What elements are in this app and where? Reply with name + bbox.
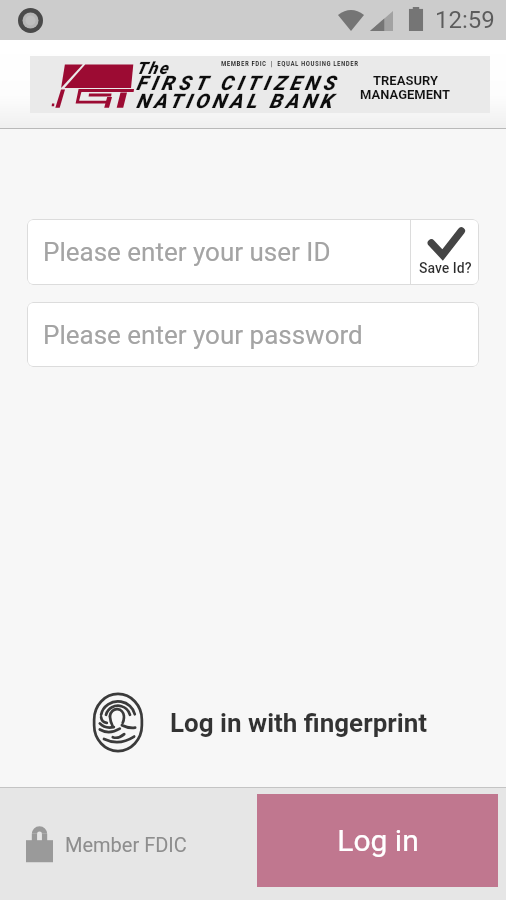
button[interactable]: Log in with fingerprint [0,686,506,759]
staticText: Please enter your password [43,320,363,350]
button[interactable]: Please enter your user ID [27,219,410,285]
staticText: 12:59 [435,6,495,34]
staticText: Log in [337,823,419,858]
staticText: Log in with fingerprint [170,708,428,738]
staticText: TREASURY [373,73,438,88]
other: Secure [26,825,53,863]
staticText: MEMBER FDIC | EQUAL HOUSING LENDER [221,60,359,68]
button[interactable]: Please enter your password [27,302,479,367]
staticText: FIRST CITIZENS [136,71,339,94]
button[interactable]: Secure [26,825,187,863]
button[interactable]: Save Id? [411,219,479,285]
staticText: Please enter your user ID [43,237,331,267]
staticText: MANAGEMENT [360,87,451,102]
staticText: NATIONAL BANK [136,89,336,112]
staticText: Member FDIC [65,833,187,856]
staticText: The [136,58,170,78]
button[interactable]: Log in [257,794,498,887]
other: Notification [18,8,43,33]
staticText: Save Id? [419,260,472,276]
